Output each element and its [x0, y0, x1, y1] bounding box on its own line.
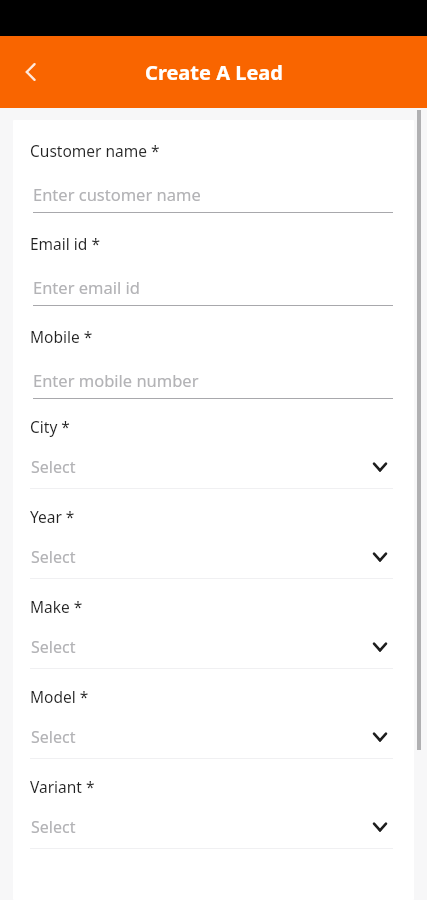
- staticText: Make *: [30, 596, 83, 617]
- staticText: Enter mobile number: [33, 369, 199, 391]
- button[interactable]: Email id *: [13, 213, 414, 306]
- staticText: Select: [31, 636, 76, 658]
- staticText: Year *: [30, 506, 75, 527]
- button[interactable]: Mobile *: [13, 306, 414, 399]
- button[interactable]: City * dropdown: [13, 399, 414, 489]
- staticText: Select: [31, 816, 76, 838]
- staticText: Enter email id: [33, 276, 140, 298]
- staticText: Customer name *: [30, 140, 160, 161]
- staticText: Select: [31, 546, 76, 568]
- staticText: Mobile *: [30, 326, 93, 347]
- staticText: Model *: [30, 686, 89, 707]
- staticText: City *: [30, 416, 70, 437]
- button[interactable]: Year * dropdown: [13, 489, 414, 579]
- staticText: Select: [31, 726, 76, 748]
- staticText: Create A Lead: [145, 59, 283, 86]
- staticText: Select: [31, 456, 76, 478]
- button[interactable]: Customer name *: [13, 120, 414, 213]
- button[interactable]: Variant * dropdown: [13, 759, 414, 849]
- staticText: Email id *: [30, 233, 100, 254]
- button[interactable]: Back: [12, 51, 54, 93]
- staticText: Enter customer name: [33, 183, 201, 205]
- staticText: Variant *: [30, 776, 95, 797]
- button[interactable]: Model * dropdown: [13, 669, 414, 759]
- button[interactable]: Make * dropdown: [13, 579, 414, 669]
